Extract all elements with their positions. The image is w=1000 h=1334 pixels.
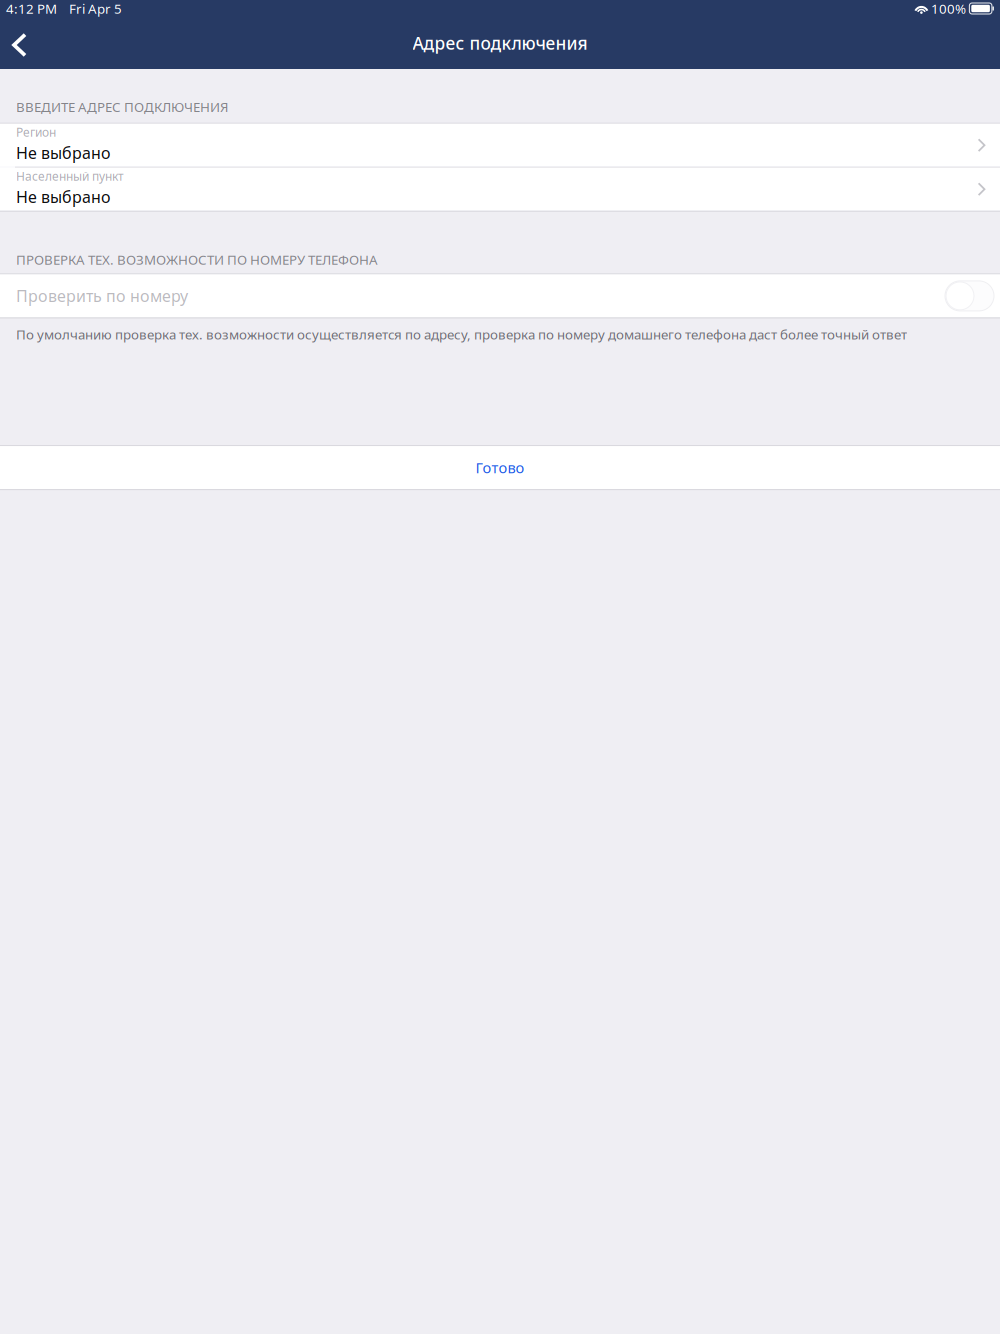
button[interactable]: Населенный пункт — [0, 168, 1000, 211]
staticText: По умолчанию проверка тех. возможности о… — [16, 325, 907, 343]
staticText: Проверить по номеру — [16, 285, 188, 306]
staticText: 4:12 PM — [6, 0, 57, 17]
staticText: ПРОВЕРКА ТЕХ. ВОЗМОЖНОСТИ ПО НОМЕРУ ТЕЛЕ… — [16, 251, 378, 268]
staticText: Fri Apr 5 — [69, 0, 122, 17]
button[interactable]: Back — [0, 16, 39, 69]
staticText: Регион — [16, 124, 56, 140]
staticText: 100% — [931, 0, 966, 17]
staticText: Не выбрано — [16, 142, 111, 163]
button[interactable]: Готово — [0, 446, 1000, 489]
staticText: ВВЕДИТЕ АДРЕС ПОДКЛЮЧЕНИЯ — [16, 98, 229, 116]
button[interactable]: Регион — [0, 124, 1000, 167]
button[interactable]: Проверить по номеру — [945, 281, 994, 311]
staticText: Готово — [475, 458, 524, 477]
staticText: Не выбрано — [16, 186, 111, 207]
staticText: Населенный пункт — [16, 168, 124, 184]
staticText: Адрес подключения — [412, 31, 587, 54]
